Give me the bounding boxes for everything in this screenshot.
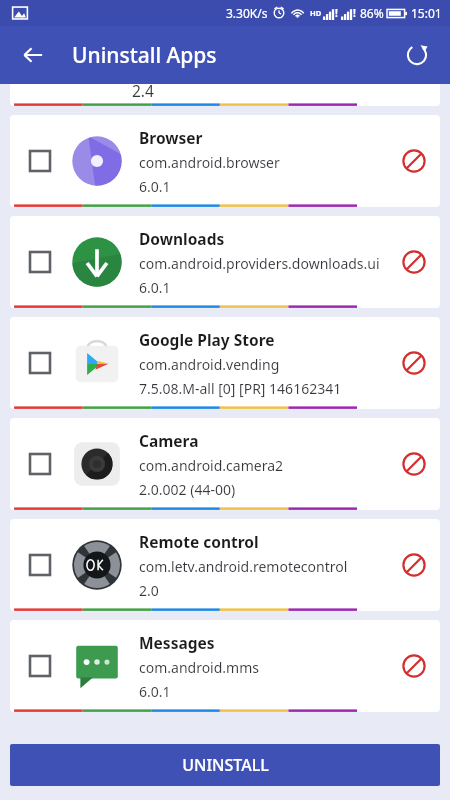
staticText: 6.0.1 [139,278,171,297]
button[interactable]: Disable Camera [392,442,436,486]
button[interactable]: Google Play Store [10,317,440,409]
staticText: 2.0.002 (44-00) [139,480,236,499]
staticText: Browser [139,127,203,148]
staticText: Remote control [139,531,259,552]
staticText: UNINSTALL [182,754,269,776]
staticText: 7.5.08.M-all [0] [PR] 146162341 [139,379,342,398]
staticText: com.android.providers.downloads.ui [139,254,380,273]
staticText: Google Play Store [139,329,275,350]
button[interactable]: Disable Messages [392,644,436,688]
button[interactable]: 2.4 [10,84,440,106]
button[interactable]: Browser [10,115,440,207]
button[interactable]: Disable Remote control [392,543,436,587]
button[interactable]: Disable Downloads [392,240,436,284]
staticText: HD [310,8,322,18]
staticText: com.android.mms [139,658,259,677]
staticText: com.android.vending [139,355,280,374]
button[interactable]: Camera [10,418,440,510]
button[interactable]: Disable Browser [392,139,436,183]
staticText: 2.4 [132,84,154,101]
staticText: Uninstall Apps [72,41,217,70]
staticText: ! [353,6,356,20]
staticText: 6.0.1 [139,177,171,196]
staticText: 15:01 [411,5,442,21]
button[interactable]: Messages [10,620,440,712]
button[interactable]: Disable Google Play Store [392,341,436,385]
staticText: ! [335,6,338,20]
staticText: Messages [139,632,215,653]
staticText: Downloads [139,228,225,249]
button[interactable]: Refresh [394,32,440,78]
button[interactable]: Back [10,32,56,78]
staticText: 6.0.1 [139,682,171,701]
staticText: com.android.browser [139,153,280,172]
staticText: 2.0 [139,581,159,600]
staticText: com.letv.android.remotecontrol [139,557,348,576]
button[interactable]: Downloads [10,216,440,308]
staticText: 86% [360,5,384,21]
button[interactable]: Remote control [10,519,440,611]
staticText: Camera [139,430,199,451]
button[interactable]: UNINSTALL [10,744,440,786]
staticText: 3.30K/s [226,5,268,21]
staticText: com.android.camera2 [139,456,284,475]
